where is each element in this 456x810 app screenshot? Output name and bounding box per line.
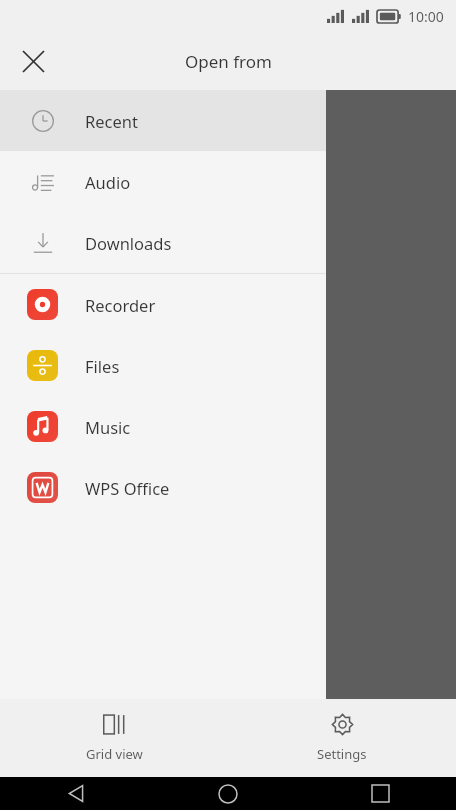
staticText: WPS Office — [85, 477, 170, 499]
staticText: Recorder — [85, 294, 156, 316]
button[interactable]: Recent — [0, 90, 326, 151]
button[interactable]: Recorder — [0, 274, 326, 335]
staticText: 10:00 — [408, 7, 444, 26]
button[interactable]: WPS Office — [0, 457, 326, 518]
staticText: Downloads — [85, 232, 172, 254]
button[interactable]: Audio — [0, 151, 326, 212]
staticText: Open from — [185, 50, 272, 73]
button[interactable]: Recents — [304, 777, 456, 810]
button[interactable]: Grid view — [0, 699, 228, 777]
button[interactable]: Files — [0, 335, 326, 396]
button[interactable]: Close — [10, 38, 56, 84]
button[interactable]: Downloads — [0, 212, 326, 273]
button[interactable]: Music — [0, 396, 326, 457]
staticText: Files — [85, 355, 120, 377]
staticText: Music — [85, 416, 131, 438]
staticText: Settings — [317, 745, 367, 763]
button[interactable]: Back — [0, 777, 152, 810]
button[interactable]: Settings — [228, 699, 456, 777]
staticText: Audio — [85, 171, 131, 193]
button[interactable]: Home — [152, 777, 304, 810]
staticText: Recent — [85, 110, 138, 132]
staticText: Grid view — [86, 745, 143, 763]
